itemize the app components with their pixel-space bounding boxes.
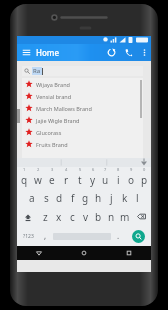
button[interactable]: More options <box>137 44 151 61</box>
button[interactable]: g <box>79 188 92 207</box>
staticText: d <box>56 191 63 205</box>
button[interactable]: 7 <box>99 167 112 188</box>
staticText: Fruits Brand <box>36 141 68 148</box>
button[interactable]: Fruits Brand <box>22 138 143 150</box>
button[interactable]: Wijaya Brand <box>22 78 143 90</box>
staticText: 4 <box>65 167 68 172</box>
button[interactable]: z <box>38 207 52 226</box>
button[interactable]: Shift <box>17 207 38 226</box>
staticText: y <box>90 173 96 187</box>
button[interactable]: Call <box>120 44 137 61</box>
staticText: Ra <box>33 67 41 75</box>
button[interactable]: Backspace <box>131 207 151 226</box>
staticText: 8 <box>117 167 120 172</box>
button[interactable]: Jajie Wigle Brand <box>22 114 143 126</box>
button[interactable]: v <box>79 207 92 226</box>
button[interactable]: n <box>105 207 118 226</box>
staticText: j <box>110 191 113 205</box>
button[interactable]: Glucorass <box>22 126 143 138</box>
staticText: Wijaya Brand <box>36 81 70 88</box>
staticText: a <box>29 191 35 205</box>
button[interactable]: 6 <box>86 167 99 188</box>
button[interactable]: s <box>39 188 53 207</box>
staticText: Vensial brand <box>36 93 72 100</box>
staticText: b <box>95 210 102 224</box>
button[interactable]: l <box>131 188 144 207</box>
staticText: f <box>71 191 75 205</box>
button[interactable]: 8 <box>112 167 125 188</box>
button[interactable]: d <box>53 188 66 207</box>
button[interactable]: 3 <box>45 167 59 188</box>
button[interactable]: Home <box>61 246 106 260</box>
button[interactable]: Recent apps <box>106 246 151 260</box>
button[interactable]: k <box>118 188 131 207</box>
button[interactable]: 5 <box>73 167 86 188</box>
button[interactable]: Open navigation menu <box>17 44 35 61</box>
button[interactable]: , <box>39 226 52 246</box>
staticText: Jajie Wigle Brand <box>36 117 80 124</box>
staticText: m <box>120 210 130 224</box>
staticText: i <box>117 173 120 187</box>
staticText: 1 <box>23 167 26 172</box>
staticText: 5 <box>79 167 82 172</box>
staticText: p <box>141 173 148 187</box>
staticText: w <box>34 173 42 187</box>
staticText: 9 <box>130 167 133 172</box>
button[interactable]: 2 <box>31 167 45 188</box>
button[interactable]: 4 <box>59 167 73 188</box>
staticText: 0 <box>143 167 146 172</box>
button[interactable]: Search <box>132 230 145 243</box>
staticText: n <box>108 210 115 224</box>
button[interactable]: j <box>105 188 118 207</box>
button[interactable]: h <box>92 188 105 207</box>
button[interactable]: . <box>112 226 125 246</box>
staticText: o <box>128 173 135 187</box>
staticText: h <box>95 191 102 205</box>
button[interactable]: Back <box>17 246 61 260</box>
staticText: 3 <box>51 167 54 172</box>
staticText: Glucorass <box>36 129 62 136</box>
button[interactable]: 9 <box>125 167 138 188</box>
staticText: 6 <box>92 167 95 172</box>
button[interactable]: March Mallows Brand <box>22 102 143 114</box>
button[interactable]: c <box>66 207 79 226</box>
staticText: t <box>78 173 82 187</box>
staticText: l <box>136 191 139 205</box>
staticText: , <box>44 230 47 241</box>
staticText: g <box>82 191 89 205</box>
staticText: k <box>122 191 128 205</box>
button[interactable]: a <box>25 188 39 207</box>
staticText: u <box>102 173 109 187</box>
button[interactable]: Ra <box>22 66 143 76</box>
button[interactable]: m <box>118 207 131 226</box>
button[interactable]: Refresh <box>103 44 120 61</box>
button[interactable]: 0 <box>138 167 151 188</box>
button[interactable]: f <box>66 188 79 207</box>
staticText: e <box>49 173 55 187</box>
staticText: x <box>56 210 62 224</box>
staticText: . <box>117 230 120 241</box>
button[interactable]: b <box>92 207 105 226</box>
staticText: q <box>21 173 28 187</box>
staticText: 2 <box>37 167 40 172</box>
staticText: 7 <box>104 167 107 172</box>
staticText: s <box>44 191 49 205</box>
staticText: March Mallows Brand <box>36 105 92 112</box>
staticText: r <box>64 173 69 187</box>
staticText: c <box>70 210 75 224</box>
button[interactable]: ?123 <box>17 226 39 246</box>
button[interactable]: x <box>52 207 66 226</box>
staticText: z <box>43 210 48 224</box>
staticText: v <box>83 210 89 224</box>
staticText: Home <box>36 47 60 58</box>
staticText: ?123 <box>23 233 34 240</box>
button[interactable]: 1 <box>17 167 31 188</box>
button[interactable]: Vensial brand <box>22 90 143 102</box>
